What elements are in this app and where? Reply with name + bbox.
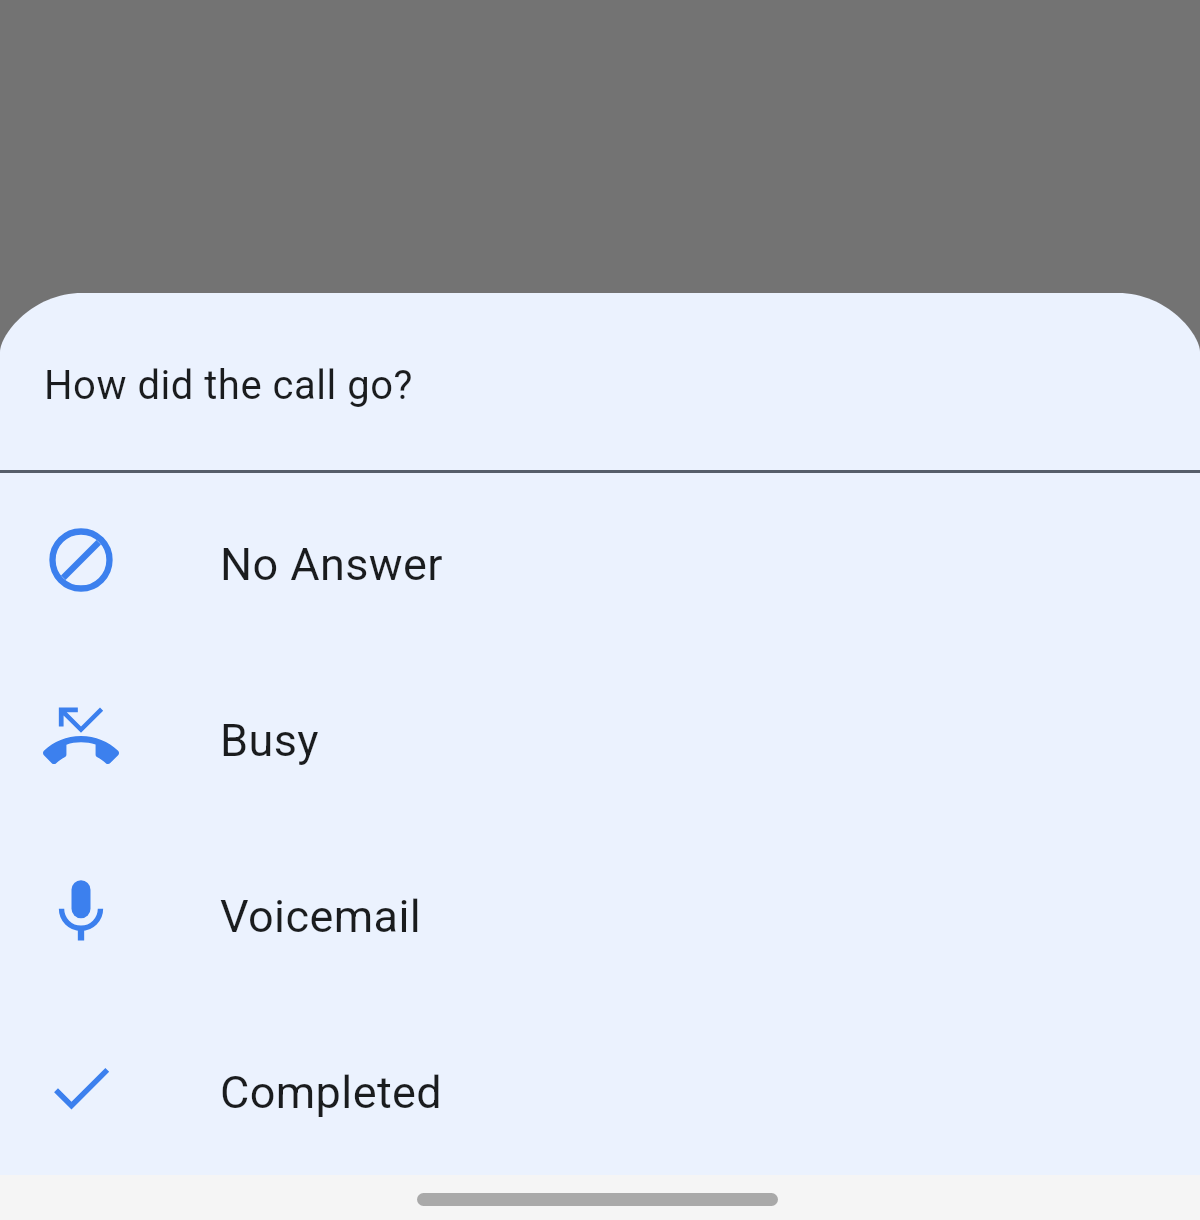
button[interactable]: Voicemail xyxy=(0,824,1200,1000)
staticText: How did the call go? xyxy=(44,362,413,409)
other: Busy xyxy=(43,698,119,774)
other: No Answer xyxy=(43,522,119,598)
other: Completed xyxy=(43,1050,119,1126)
button[interactable]: Busy xyxy=(0,648,1200,824)
button[interactable]: Completed xyxy=(0,1000,1200,1175)
staticText: Busy xyxy=(220,714,319,767)
other: Voicemail xyxy=(43,874,119,950)
button[interactable]: No Answer xyxy=(0,472,1200,648)
staticText: Completed xyxy=(220,1066,443,1119)
staticText: Voicemail xyxy=(220,890,422,943)
staticText: No Answer xyxy=(220,538,443,591)
